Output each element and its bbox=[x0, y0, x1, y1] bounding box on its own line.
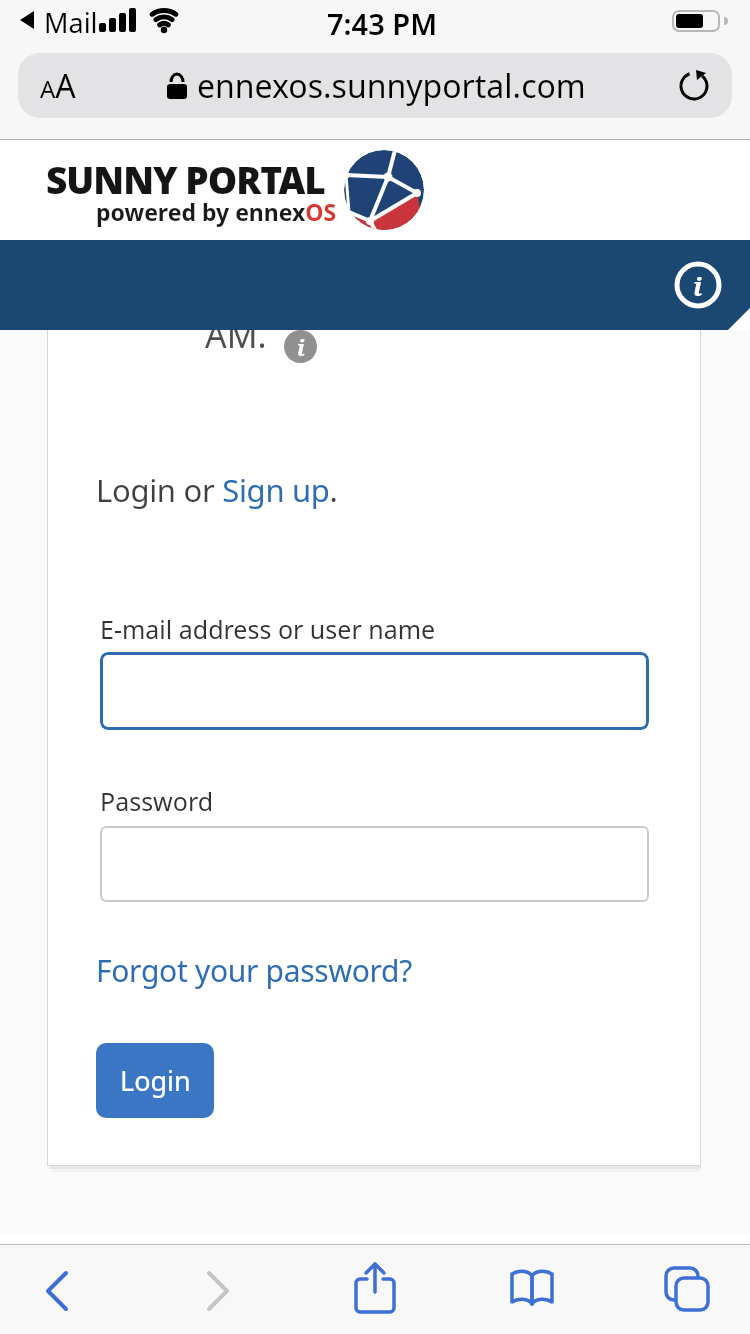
button[interactable] bbox=[205, 1271, 231, 1311]
button[interactable]: i bbox=[674, 261, 722, 309]
button[interactable] bbox=[100, 826, 649, 902]
staticText: E-mail address or user name bbox=[100, 612, 436, 646]
staticText: AA bbox=[40, 64, 76, 108]
staticText: ennexos.sunnyportal.com bbox=[197, 64, 586, 108]
button[interactable]: Login or Sign up. bbox=[96, 469, 338, 511]
button[interactable] bbox=[508, 1268, 556, 1310]
staticText: AM. bbox=[205, 312, 267, 358]
staticText: 7:43 PM bbox=[327, 4, 438, 43]
button[interactable]: Login bbox=[96, 1043, 214, 1118]
staticText: i bbox=[297, 332, 305, 362]
button[interactable] bbox=[664, 1266, 712, 1312]
staticText: Password bbox=[100, 784, 214, 818]
staticText: Mail bbox=[44, 4, 98, 41]
staticText: i bbox=[693, 268, 703, 303]
staticText: Login bbox=[120, 1062, 191, 1099]
staticText: powered by ennexOS bbox=[96, 196, 337, 227]
button[interactable]: Forgot your password? bbox=[96, 950, 412, 991]
button[interactable] bbox=[352, 1262, 398, 1318]
button[interactable] bbox=[100, 652, 649, 730]
button[interactable]: AA bbox=[18, 53, 732, 118]
staticText: SUNNY PORTAL bbox=[46, 154, 325, 204]
button[interactable] bbox=[44, 1271, 70, 1311]
